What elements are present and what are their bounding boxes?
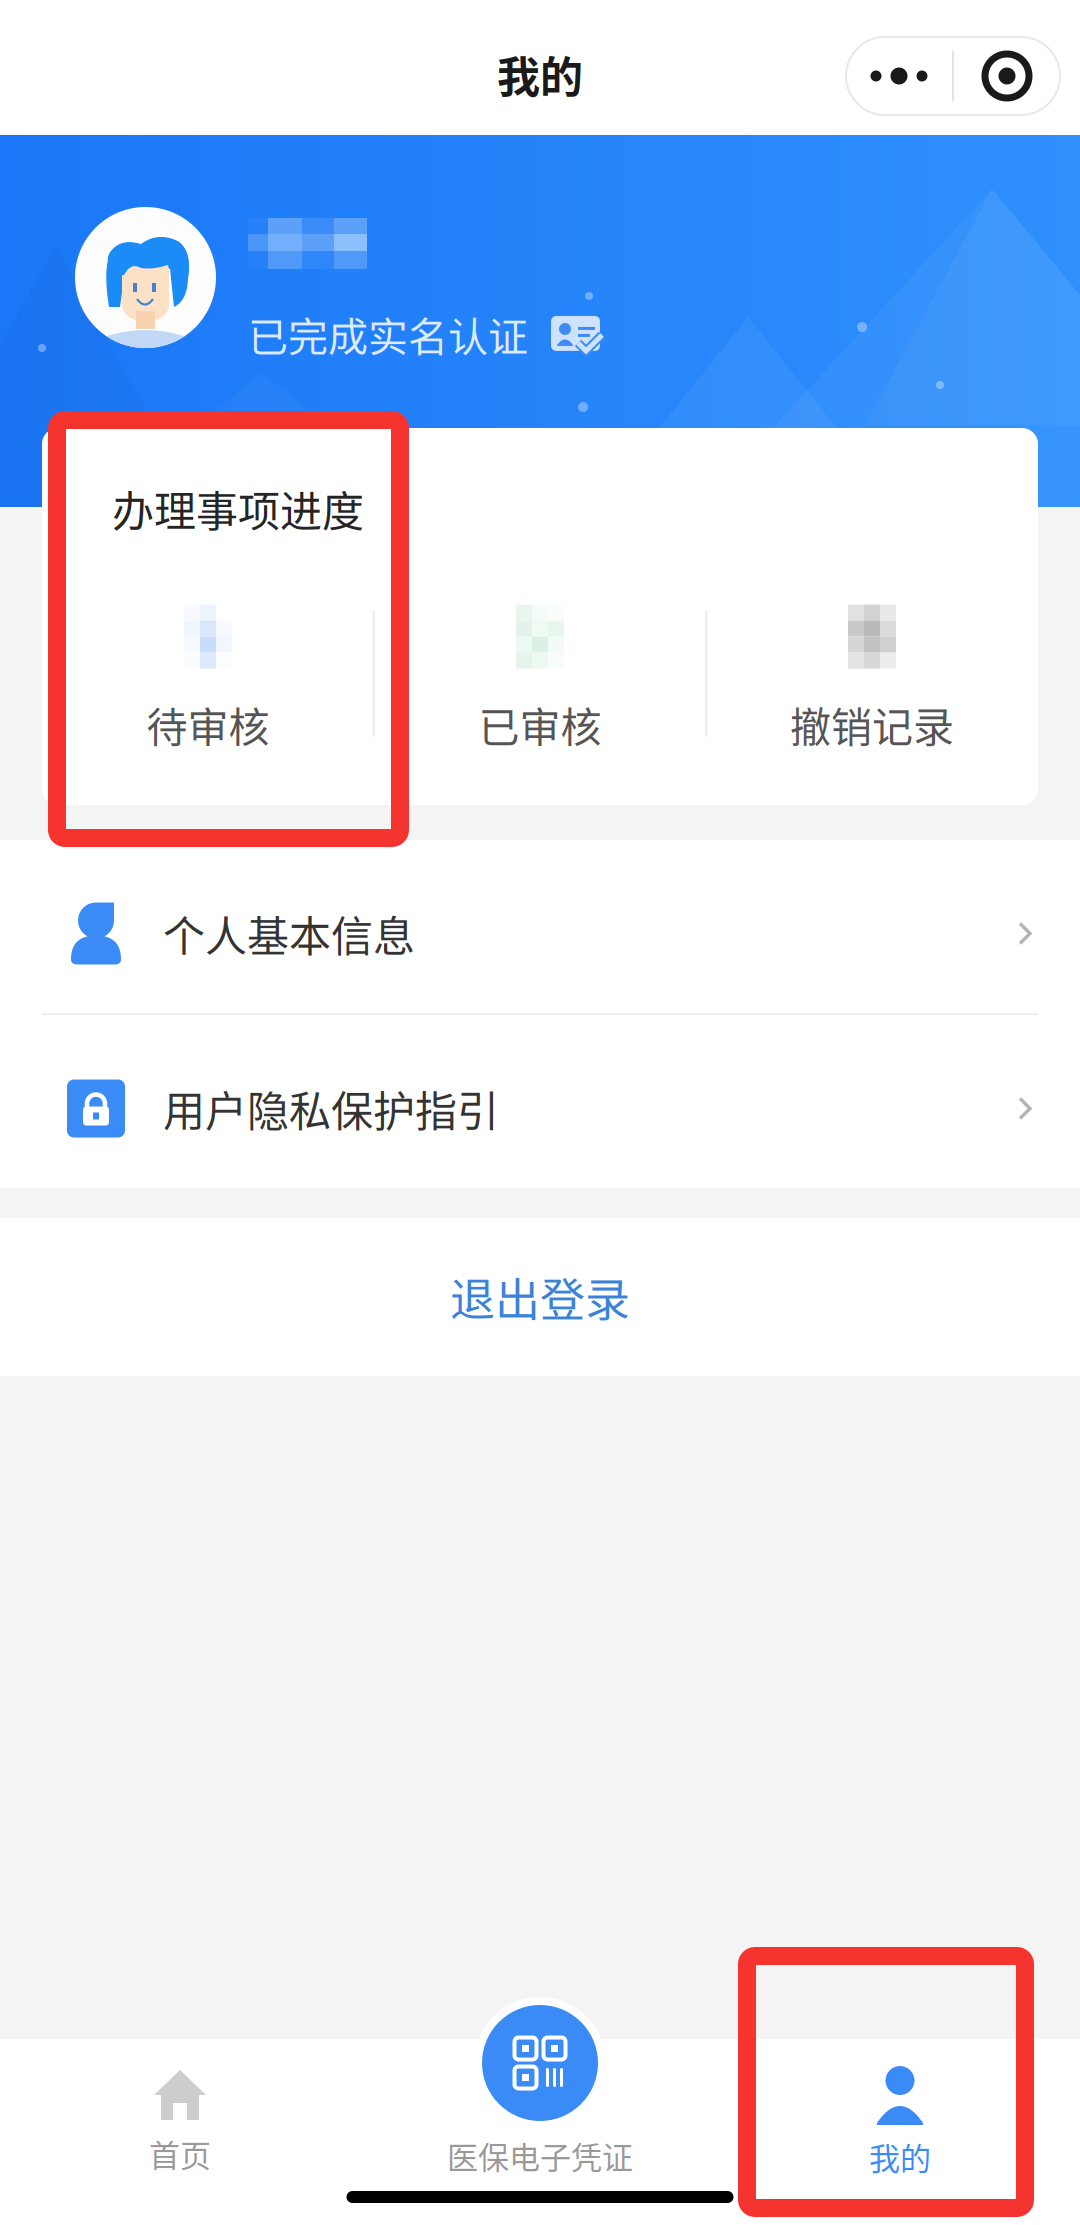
staticText: 待审核 bbox=[146, 695, 269, 754]
button[interactable]: 我的 bbox=[720, 2039, 1080, 2225]
staticText: 退出登录 bbox=[450, 1264, 630, 1330]
staticText: 已审核 bbox=[478, 695, 601, 754]
staticText: 撤销记录 bbox=[790, 695, 954, 754]
button[interactable]: 撤销记录 bbox=[706, 583, 1038, 758]
staticText: 已完成实名认证 bbox=[248, 305, 528, 363]
staticText: 医保电子凭证 bbox=[447, 2133, 633, 2178]
button[interactable]: 医保电子凭证 bbox=[360, 2039, 720, 2225]
button[interactable]: 退出登录 bbox=[0, 1218, 1080, 1376]
button[interactable]: 待审核 bbox=[42, 583, 374, 758]
staticText: 我的 bbox=[497, 43, 583, 105]
button[interactable]: 个人基本信息 bbox=[0, 840, 1080, 1013]
staticText: 首页 bbox=[149, 2131, 211, 2176]
button[interactable]: 首页 bbox=[0, 2039, 360, 2225]
staticText: 个人基本信息 bbox=[163, 903, 415, 964]
staticText: 我的 bbox=[869, 2134, 931, 2179]
button[interactable]: 已审核 bbox=[374, 583, 706, 758]
button[interactable]: 更多 bbox=[846, 37, 1060, 115]
staticText: 用户隐私保护指引 bbox=[163, 1078, 499, 1139]
button[interactable]: 用户隐私保护指引 bbox=[0, 1015, 1080, 1188]
staticText: 办理事项进度 bbox=[112, 478, 364, 539]
